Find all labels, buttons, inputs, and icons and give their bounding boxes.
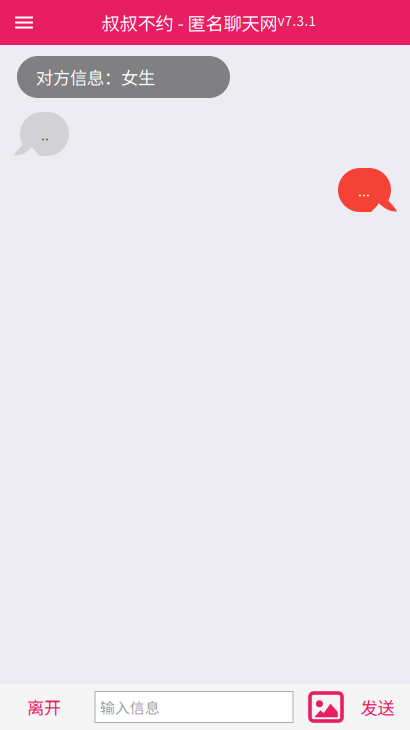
staticText: 对方信息：女生 — [36, 64, 155, 90]
button[interactable]: Send photo — [307, 684, 345, 730]
staticText: 输入信息 — [100, 696, 160, 718]
staticText: 发送 — [360, 694, 394, 720]
staticText: 离开 — [27, 694, 61, 720]
staticText: .. — [41, 123, 49, 145]
button[interactable]: 发送 — [345, 684, 410, 730]
staticText: v7.3.1 — [277, 10, 316, 30]
button[interactable]: Menu — [0, 0, 48, 45]
staticText: ... — [358, 179, 370, 201]
staticText: 叔叔不约 - 匿名聊天网 — [101, 9, 277, 36]
button[interactable]: 离开 — [0, 684, 88, 730]
